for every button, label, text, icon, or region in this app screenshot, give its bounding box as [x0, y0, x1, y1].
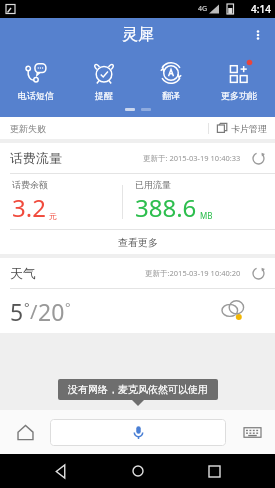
button[interactable]: Back	[46, 456, 76, 486]
staticText: 电话短信	[18, 90, 54, 101]
button[interactable]: 更多功能	[208, 60, 270, 101]
button[interactable]: Keyboard	[239, 419, 265, 445]
button[interactable]: Refresh	[247, 147, 269, 169]
button[interactable]: Refresh	[247, 262, 269, 284]
staticText: 5	[10, 296, 24, 327]
button[interactable]: More options	[241, 18, 275, 52]
staticText: °	[24, 298, 30, 316]
staticText: 元	[49, 211, 57, 221]
staticText: 更新于:2015-03-19 10:40:20	[145, 268, 241, 278]
staticText: °	[65, 298, 71, 316]
staticText: 话费余额	[12, 179, 48, 190]
staticText: 388.6	[135, 191, 197, 224]
button[interactable]: Home	[123, 456, 153, 486]
staticText: 灵犀	[122, 25, 154, 45]
staticText: MB	[200, 210, 213, 221]
staticText: 3.2	[12, 191, 46, 224]
button[interactable]: 查看更多	[0, 230, 275, 254]
staticText: 更新失败	[10, 123, 46, 134]
button[interactable]: 卡片管理	[208, 117, 275, 139]
staticText: 天气	[10, 265, 36, 281]
staticText: 更新于: 2015-03-19 10:40:33	[143, 153, 241, 163]
staticText: 提醒	[95, 90, 113, 101]
staticText: 没有网络，麦克风依然可以使用	[68, 383, 208, 396]
button[interactable]: 电话短信	[5, 60, 67, 101]
button[interactable]: Recents	[199, 456, 229, 486]
staticText: 话费流量	[10, 150, 62, 166]
button[interactable]: Voice search	[50, 419, 226, 446]
staticText: 20	[38, 296, 65, 327]
staticText: 已用流量	[135, 179, 171, 190]
staticText: /	[30, 298, 38, 325]
staticText: 4:14	[251, 2, 271, 16]
staticText: 查看更多	[118, 236, 158, 249]
button[interactable]: Home	[12, 419, 38, 445]
staticText: 更多功能	[221, 90, 257, 101]
button[interactable]: 提醒	[73, 60, 135, 101]
staticText: 卡片管理	[231, 123, 267, 134]
staticText: 翻译	[162, 90, 180, 101]
staticText: 4G	[198, 4, 208, 14]
button[interactable]: 翻译	[140, 60, 202, 101]
